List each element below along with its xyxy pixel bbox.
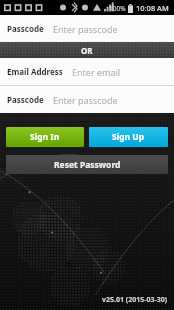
staticText: OR (81, 45, 93, 56)
staticText: Sign Up (112, 131, 145, 143)
button[interactable]: Reset Password (6, 155, 168, 174)
staticText: 10:08 AM (136, 3, 169, 13)
staticText: Email Address (7, 66, 63, 77)
staticText: Enter passcode (53, 94, 118, 106)
button[interactable]: Passcode (0, 86, 174, 113)
button[interactable]: Sign In (6, 127, 84, 147)
staticText: 100% (109, 4, 126, 13)
button[interactable]: Email Address (0, 58, 174, 85)
staticText: v25.01 (2015-03-30) (102, 295, 168, 305)
staticText: Passcode (7, 94, 44, 105)
staticText: Enter passcode (53, 23, 118, 35)
button[interactable]: Passcode (0, 15, 174, 42)
staticText: Sign In (30, 131, 60, 143)
staticText: Reset Password (54, 159, 121, 171)
button[interactable]: Sign Up (89, 127, 168, 147)
staticText: Passcode (7, 23, 44, 34)
staticText: Enter email (72, 66, 121, 78)
